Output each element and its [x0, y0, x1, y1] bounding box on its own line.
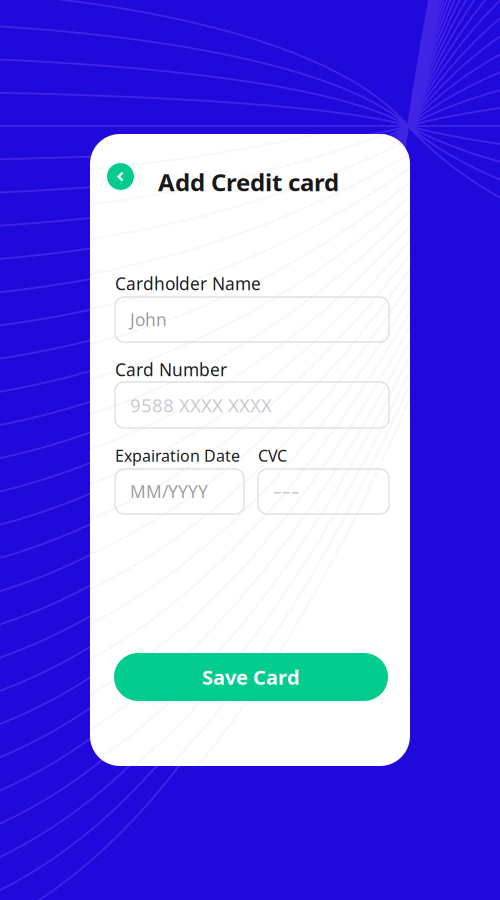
- staticText: John: [130, 308, 167, 331]
- staticText: MM/YYYY: [130, 480, 208, 503]
- staticText: Cardholder Name: [115, 272, 261, 295]
- staticText: Add Credit card: [158, 166, 339, 198]
- staticText: –––: [273, 480, 300, 503]
- staticText: CVC: [258, 445, 287, 466]
- staticText: 9588 XXXX XXXX: [130, 393, 272, 417]
- button[interactable]: Save Card: [114, 653, 388, 701]
- staticText: Save Card: [202, 664, 300, 690]
- staticText: Card Number: [115, 358, 227, 381]
- button[interactable]: Back: [107, 163, 134, 190]
- staticText: Expairation Date: [115, 445, 240, 466]
